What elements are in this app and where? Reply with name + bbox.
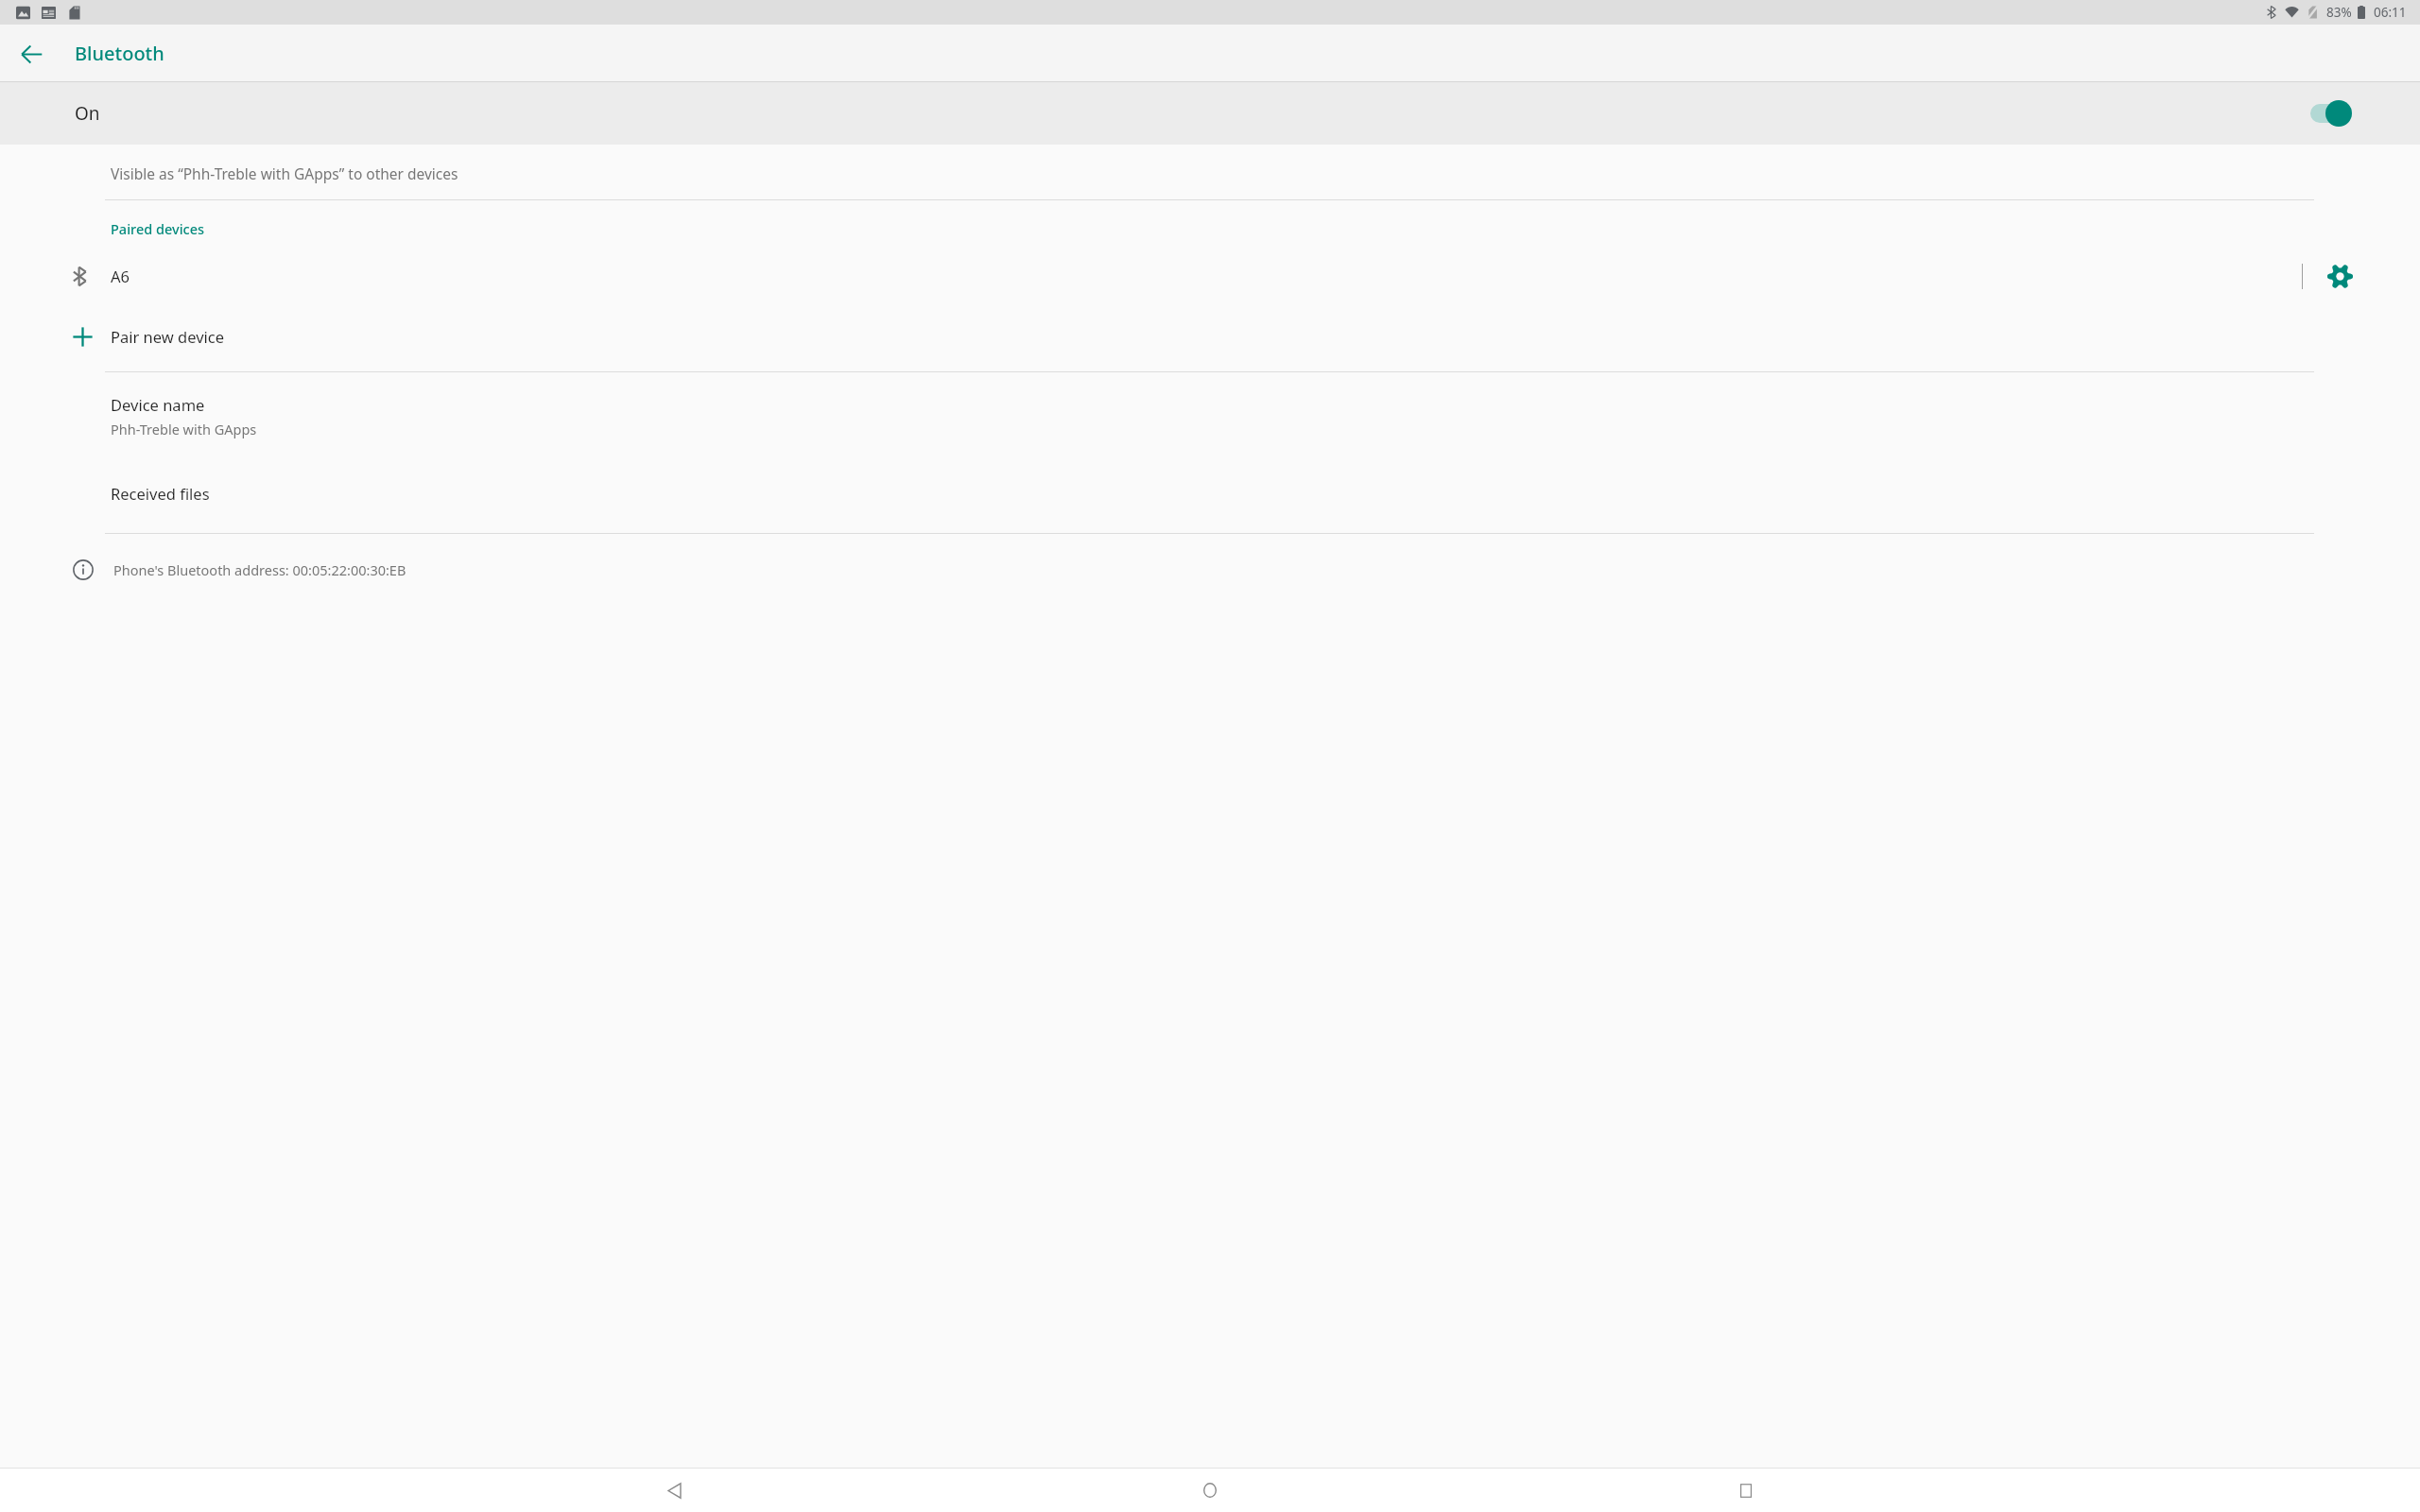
staticText: 06:11 [2374,4,2407,21]
staticText: On [75,101,100,126]
staticText: Pair new device [111,326,225,347]
button[interactable]: Home [1189,1469,1231,1511]
staticText: Visible as “Phh-Treble with GApps” to ot… [111,163,458,183]
button[interactable]: Back [653,1469,695,1511]
staticText: Paired devices [111,219,205,238]
button[interactable]: Device name [0,372,2420,459]
staticText: Received files [111,483,210,504]
button[interactable]: A6 [0,247,2302,305]
button[interactable]: On [0,82,2420,145]
button[interactable]: Back [10,33,52,75]
staticText: A6 [111,266,130,286]
staticText: Bluetooth [75,41,164,66]
button[interactable]: Received files [0,459,2420,527]
button[interactable]: Device settings [2318,254,2361,298]
staticText: 83% [2326,4,2352,21]
staticText: Phone's Bluetooth address: 00:05:22:00:3… [113,560,406,579]
staticText: Device name [111,394,205,415]
staticText: Phh-Treble with GApps [111,420,257,438]
button[interactable]: Recents [1725,1469,1767,1511]
button[interactable]: Pair new device [0,305,2420,368]
